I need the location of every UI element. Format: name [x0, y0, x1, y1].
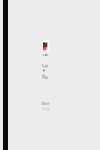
button[interactable]: Done	[42, 102, 50, 105]
staticText: Help	[42, 107, 49, 111]
staticText: Case	[42, 53, 48, 56]
staticText: Au	[43, 74, 47, 77]
staticText: Done	[42, 102, 50, 105]
staticText: Total	[42, 64, 48, 68]
button[interactable]: Product photo	[42, 40, 49, 51]
staticText: Paid	[42, 76, 48, 80]
